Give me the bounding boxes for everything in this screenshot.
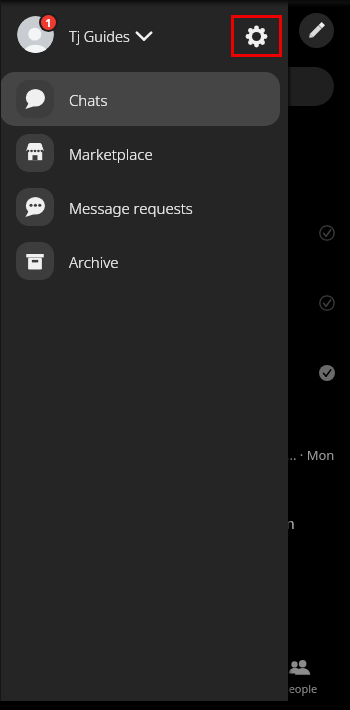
staticText: 1 (45, 15, 52, 30)
button[interactable]: People (275, 659, 325, 705)
staticText: Chats (69, 90, 108, 110)
button[interactable]: Message requests (0, 180, 280, 234)
button[interactable]: Tj Guides (69, 0, 153, 72)
button[interactable]: Marketplace (0, 126, 280, 180)
staticText: Marketplace (69, 144, 153, 164)
staticText: ... · Mon (286, 446, 335, 464)
button[interactable]: Archive (0, 234, 280, 288)
button[interactable]: Profile (17, 16, 54, 53)
staticText: People (282, 681, 318, 696)
staticText: Message requests (69, 198, 193, 218)
button[interactable]: New message (299, 13, 334, 48)
button[interactable]: Chats (0, 72, 280, 126)
button[interactable]: Settings (231, 15, 282, 57)
button[interactable] (16, 67, 334, 106)
staticText: Archive (69, 252, 119, 272)
staticText: Tj Guides (69, 26, 130, 46)
staticText: n (286, 514, 295, 533)
